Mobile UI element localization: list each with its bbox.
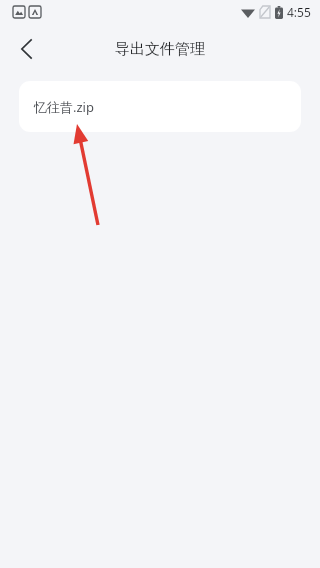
staticText: 忆往昔.zip — [34, 98, 94, 116]
button[interactable]: 忆往昔.zip — [19, 81, 301, 132]
button[interactable]: Back — [6, 29, 46, 69]
staticText: 4:55 — [287, 4, 311, 20]
staticText: 导出文件管理 — [0, 40, 320, 59]
